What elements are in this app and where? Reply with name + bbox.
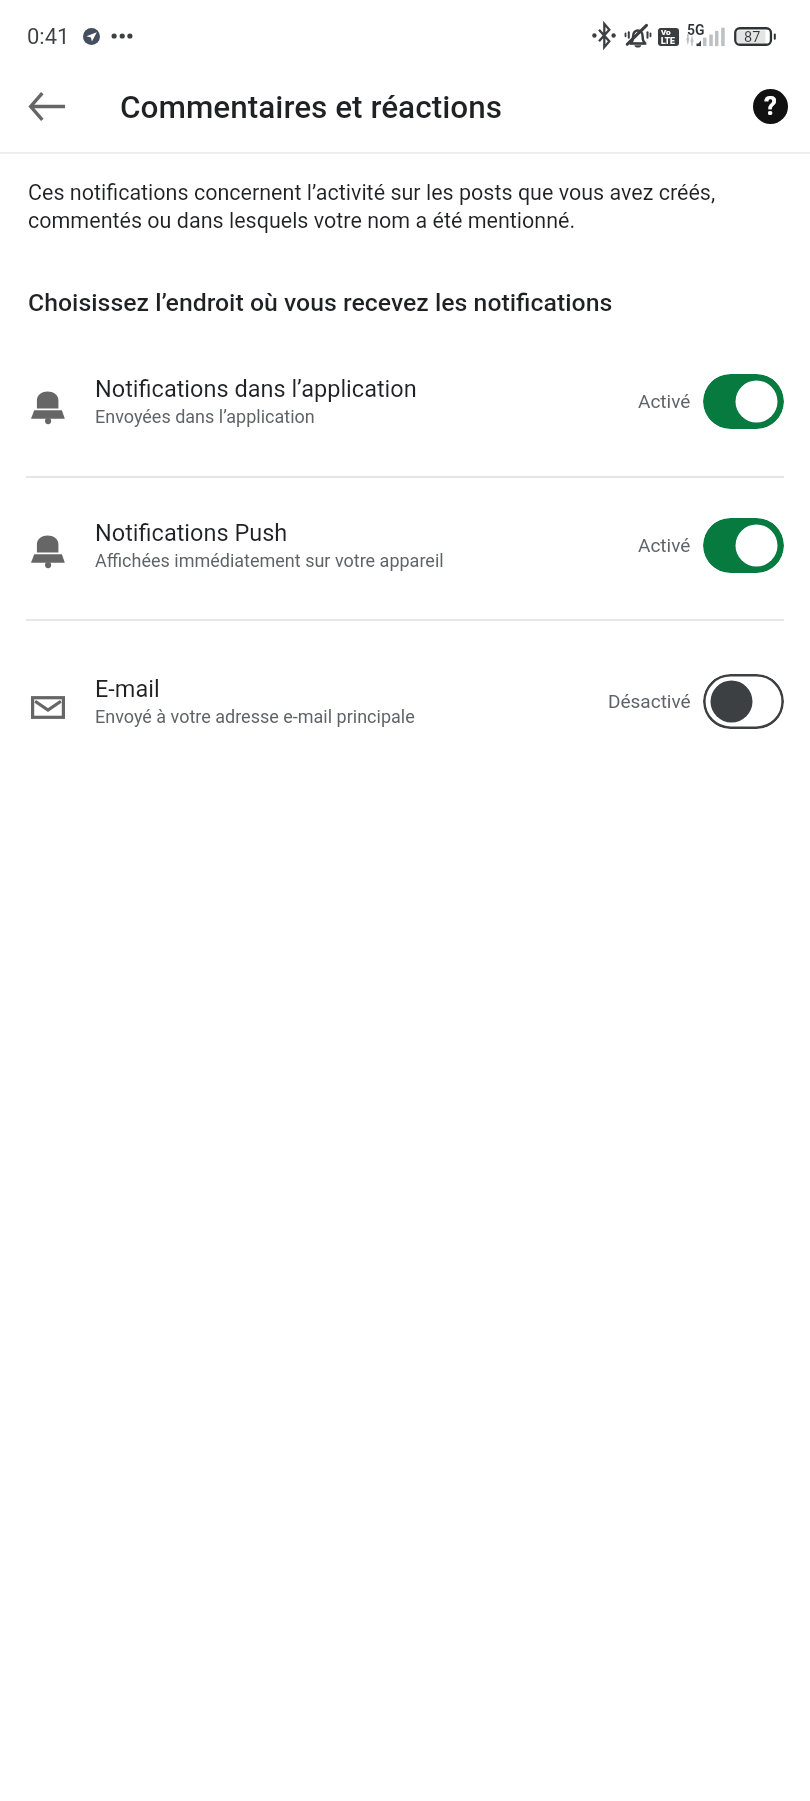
button[interactable]: Retour xyxy=(11,70,83,142)
button[interactable]: Activé xyxy=(703,518,784,573)
button[interactable]: Désactivé xyxy=(703,674,784,729)
staticText: 5G xyxy=(687,22,705,38)
staticText: ? xyxy=(764,91,777,121)
staticText: Désactivé xyxy=(608,690,691,712)
staticText: Commentaires et réactions xyxy=(120,89,502,126)
button[interactable]: Notifications Push xyxy=(0,496,810,594)
staticText: Activé xyxy=(638,534,691,556)
staticText: 0:41 xyxy=(27,24,70,50)
staticText: Vo xyxy=(661,28,671,37)
staticText: Ces notifications concernent l’activité … xyxy=(28,180,716,205)
button[interactable]: E-mail xyxy=(0,652,810,750)
staticText: Notifications dans l’application xyxy=(95,375,417,403)
staticText: Activé xyxy=(638,390,691,412)
button[interactable]: Activé xyxy=(703,374,784,429)
staticText: commentés ou dans lesquels votre nom a é… xyxy=(28,208,576,233)
staticText: Notifications Push xyxy=(95,519,288,547)
staticText: Envoyé à votre adresse e-mail principale xyxy=(95,706,415,727)
staticText: Affichées immédiatement sur votre appare… xyxy=(95,550,444,571)
button[interactable]: Notifications dans l’application xyxy=(0,352,810,450)
button[interactable]: Aide xyxy=(734,70,806,142)
staticText: Choisissez l’endroit où vous recevez les… xyxy=(28,288,613,317)
staticText: Envoyées dans l’application xyxy=(95,406,315,427)
staticText: E-mail xyxy=(95,675,160,703)
staticText: 87 xyxy=(744,29,761,46)
staticText: LTE xyxy=(661,36,675,46)
